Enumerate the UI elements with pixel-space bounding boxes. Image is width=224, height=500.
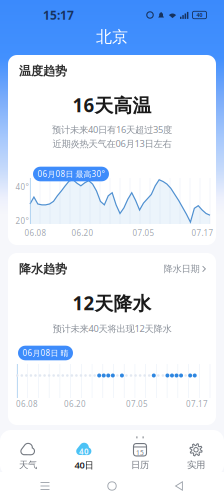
staticText: 降水趋势 <box>19 262 67 276</box>
staticText: 近期炎热天气在06月13日左右 <box>52 137 171 150</box>
staticText: 40日 <box>74 459 93 471</box>
button[interactable]: Recents <box>23 473 67 499</box>
staticText: 15 <box>136 448 144 457</box>
staticText: 12天降水 <box>72 291 151 315</box>
staticText: 06月08日 晴 <box>22 348 68 358</box>
button[interactable]: 天气 <box>0 438 56 474</box>
button[interactable]: 实用 <box>168 438 224 474</box>
button[interactable]: Back <box>157 473 201 499</box>
staticText: 预计未来40日有16天超过35度 <box>52 123 172 136</box>
staticText: 07.17 <box>191 228 213 238</box>
staticText: 06.08 <box>24 228 46 238</box>
staticText: 40 <box>79 446 89 457</box>
button[interactable]: Home <box>90 473 134 499</box>
staticText: 预计未来40天将出现12天降水 <box>52 322 171 335</box>
staticText: 16天高温 <box>72 93 151 117</box>
staticText: 06.20 <box>71 228 93 238</box>
staticText: 06.20 <box>64 399 86 409</box>
staticText: 天气 <box>19 459 37 471</box>
staticText: 20° <box>15 216 28 226</box>
staticText: 日历 <box>131 459 149 471</box>
button[interactable]: 40 <box>56 438 112 474</box>
staticText: 07.05 <box>132 228 154 238</box>
staticText: 07.05 <box>126 399 148 409</box>
staticText: 07.17 <box>186 399 208 409</box>
staticText: 40° <box>15 182 28 192</box>
staticText: 降水日期 <box>163 263 199 275</box>
button[interactable]: 15 <box>112 438 168 474</box>
staticText: 15:17 <box>43 7 74 23</box>
button[interactable]: 降水日期 <box>163 263 206 275</box>
staticText: 温度趋势 <box>19 64 67 78</box>
staticText: 实用 <box>187 459 205 471</box>
staticText: 北京 <box>96 27 128 47</box>
staticText: 06.08 <box>16 399 38 409</box>
staticText: 06月08日 最高30° <box>37 169 104 179</box>
staticText: 40 <box>196 11 202 19</box>
